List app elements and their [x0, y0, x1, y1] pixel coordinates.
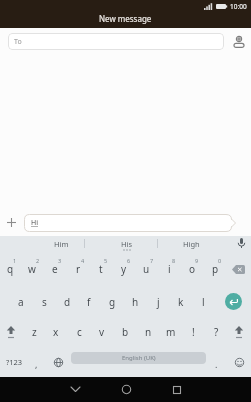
staticText: ,: [35, 358, 38, 370]
button[interactable]: o: [181, 258, 203, 280]
button[interactable]: q: [0, 258, 21, 280]
button[interactable]: t: [90, 258, 112, 280]
button[interactable]: English (UK): [71, 352, 206, 364]
button[interactable]: p: [204, 258, 226, 280]
button[interactable]: .: [205, 353, 227, 375]
staticText: p: [212, 262, 219, 276]
button[interactable]: x: [45, 321, 67, 343]
button[interactable]: [227, 258, 249, 280]
button[interactable]: [152, 377, 202, 402]
staticText: a: [18, 295, 24, 309]
button[interactable]: High: [166, 236, 216, 251]
button[interactable]: a: [10, 291, 32, 313]
staticText: His: [121, 239, 133, 249]
button[interactable]: h: [124, 291, 146, 313]
staticText: 10:00: [230, 2, 247, 11]
staticText: English (UK): [122, 354, 156, 362]
button[interactable]: [47, 351, 69, 373]
staticText: ?: [214, 325, 219, 339]
staticText: 4: [81, 257, 85, 264]
button[interactable]: [228, 351, 250, 373]
staticText: k: [178, 295, 184, 309]
staticText: .: [215, 358, 218, 370]
staticText: To: [14, 37, 22, 47]
button[interactable]: [0, 321, 22, 343]
button[interactable]: g: [101, 291, 123, 313]
button[interactable]: ?123: [3, 351, 25, 373]
button[interactable]: Him: [36, 236, 86, 251]
button[interactable]: ,: [25, 353, 47, 375]
button[interactable]: z: [23, 321, 45, 343]
staticText: s: [42, 295, 47, 309]
button[interactable]: [0, 209, 22, 236]
staticText: 8: [172, 257, 176, 264]
button[interactable]: l: [192, 291, 214, 313]
staticText: r: [76, 262, 81, 276]
staticText: 0: [218, 257, 222, 264]
staticText: q: [7, 262, 14, 276]
button[interactable]: u: [135, 258, 157, 280]
button[interactable]: [50, 377, 100, 402]
staticText: x: [53, 325, 59, 339]
button[interactable]: r: [67, 258, 89, 280]
staticText: l: [202, 295, 205, 309]
staticText: n: [145, 325, 152, 339]
button[interactable]: s: [33, 291, 55, 313]
staticText: 9: [195, 257, 199, 264]
staticText: j: [157, 295, 160, 309]
staticText: !: [192, 325, 195, 339]
staticText: 3: [58, 257, 62, 264]
staticText: y: [121, 262, 127, 276]
button[interactable]: [100, 377, 152, 402]
staticText: w: [28, 262, 36, 276]
button[interactable]: [225, 293, 242, 310]
staticText: ?123: [6, 357, 23, 367]
staticText: u: [143, 262, 150, 276]
staticText: b: [122, 325, 129, 339]
staticText: v: [99, 325, 105, 339]
button[interactable]: b: [114, 321, 136, 343]
button[interactable]: y: [113, 258, 135, 280]
button[interactable]: w: [21, 258, 43, 280]
button[interactable]: n: [137, 321, 159, 343]
staticText: m: [166, 325, 176, 339]
staticText: h: [132, 295, 139, 309]
button[interactable]: ?: [205, 321, 227, 343]
staticText: 5: [104, 257, 108, 264]
staticText: High: [183, 239, 200, 249]
staticText: f: [87, 295, 91, 309]
staticText: g: [109, 295, 116, 309]
button[interactable]: m: [160, 321, 182, 343]
button[interactable]: Hi: [24, 214, 236, 232]
button[interactable]: To: [8, 33, 224, 50]
staticText: i: [168, 262, 171, 276]
button[interactable]: [234, 236, 249, 251]
staticText: 2: [36, 257, 40, 264]
staticText: 6: [127, 257, 131, 264]
button[interactable]: c: [68, 321, 90, 343]
button[interactable]: !: [182, 321, 204, 343]
button[interactable]: d: [56, 291, 78, 313]
staticText: Hi: [31, 218, 38, 228]
staticText: d: [64, 295, 71, 309]
staticText: t: [99, 262, 103, 276]
staticText: 7: [150, 257, 154, 264]
staticText: e: [52, 262, 58, 276]
button[interactable]: k: [170, 291, 192, 313]
staticText: c: [77, 325, 82, 339]
staticText: New message: [99, 13, 152, 24]
button[interactable]: [232, 34, 246, 48]
staticText: o: [189, 262, 196, 276]
staticText: 1: [13, 257, 17, 264]
staticText: Him: [54, 239, 69, 249]
button[interactable]: v: [91, 321, 113, 343]
button[interactable]: e: [44, 258, 66, 280]
button[interactable]: His: [102, 236, 152, 251]
button[interactable]: j: [147, 291, 169, 313]
button[interactable]: [228, 321, 250, 343]
staticText: z: [32, 325, 37, 339]
button[interactable]: i: [158, 258, 180, 280]
button[interactable]: f: [78, 291, 100, 313]
